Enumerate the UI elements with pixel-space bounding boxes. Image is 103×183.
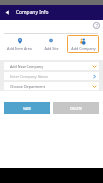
button[interactable]: Help: [92, 21, 101, 30]
button[interactable]: Add Site: [35, 35, 67, 53]
button[interactable]: Add Item Area: [4, 35, 35, 53]
button[interactable]: Choose Department: [4, 82, 99, 90]
staticText: Enter Company Name: [10, 74, 92, 79]
button[interactable]: SAVE: [4, 102, 50, 114]
button[interactable]: DELETE: [53, 102, 99, 114]
staticText: Choose Department: [10, 84, 92, 89]
button[interactable]: Add New Company: [4, 62, 99, 70]
button[interactable]: Enter Company Name: [4, 72, 99, 80]
staticText: SAVE: [23, 106, 32, 111]
button[interactable]: Back: [0, 5, 14, 20]
button[interactable]: Add Company: [67, 35, 99, 53]
staticText: Company Info: [16, 9, 49, 16]
staticText: Add Company: [71, 46, 96, 51]
staticText: DELETE: [70, 106, 83, 111]
staticText: Add Item Area: [7, 46, 32, 51]
staticText: Add New Company: [10, 64, 92, 69]
staticText: ?: [96, 23, 98, 29]
staticText: Add Site: [44, 46, 59, 51]
